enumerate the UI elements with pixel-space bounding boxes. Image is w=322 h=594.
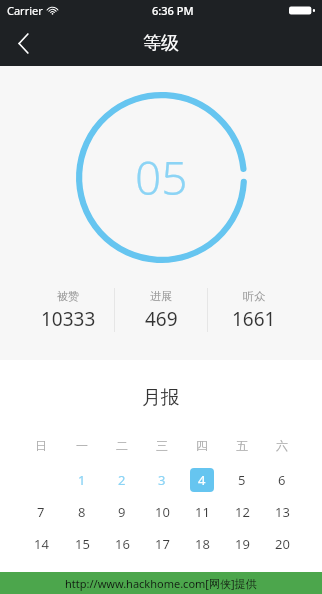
- staticText: 6: [278, 471, 286, 489]
- staticText: 6:36 PM: [152, 3, 194, 18]
- button[interactable]: 12: [230, 500, 254, 524]
- staticText: 469: [145, 306, 178, 332]
- staticText: 10333: [41, 306, 96, 332]
- staticText: 被赞: [57, 289, 79, 303]
- button[interactable]: 被赞: [22, 288, 114, 332]
- button[interactable]: 15: [70, 532, 94, 556]
- button[interactable]: 19: [230, 532, 254, 556]
- staticText: http://www.hackhome.com[网侠]提供: [65, 576, 257, 591]
- staticText: 8: [78, 503, 86, 521]
- staticText: 2: [118, 471, 126, 489]
- staticText: 20: [275, 535, 290, 553]
- staticText: 10: [155, 503, 170, 521]
- staticText: 月报: [0, 386, 322, 410]
- button[interactable]: 14: [29, 532, 53, 556]
- staticText: 19: [235, 535, 250, 553]
- staticText: 4: [198, 471, 206, 489]
- button[interactable]: 2: [110, 468, 134, 492]
- staticText: 05: [135, 146, 188, 209]
- staticText: 二: [116, 438, 128, 453]
- staticText: 17: [155, 535, 170, 553]
- button[interactable]: 3: [150, 468, 174, 492]
- staticText: 18: [195, 535, 210, 553]
- button[interactable]: 进展: [115, 288, 207, 332]
- staticText: 进展: [150, 289, 172, 303]
- staticText: 日: [35, 438, 47, 453]
- button[interactable]: 10: [150, 500, 174, 524]
- button[interactable]: Back: [0, 20, 46, 66]
- button[interactable]: 13: [270, 500, 294, 524]
- staticText: 14: [34, 535, 49, 553]
- staticText: 一: [76, 438, 88, 453]
- button[interactable]: 听众: [208, 288, 300, 332]
- button[interactable]: 16: [110, 532, 134, 556]
- button[interactable]: 5: [230, 468, 254, 492]
- staticText: 三: [156, 438, 168, 453]
- staticText: 9: [118, 503, 126, 521]
- button[interactable]: 8: [70, 500, 94, 524]
- button[interactable]: 6: [270, 468, 294, 492]
- button[interactable]: 1: [70, 468, 94, 492]
- staticText: 四: [196, 438, 208, 453]
- staticText: 16: [115, 535, 130, 553]
- staticText: 12: [235, 503, 250, 521]
- staticText: 13: [275, 503, 290, 521]
- staticText: 11: [195, 503, 210, 521]
- staticText: 1661: [232, 306, 276, 332]
- staticText: 等级: [143, 32, 179, 55]
- staticText: 7: [37, 503, 45, 521]
- button[interactable]: 4: [190, 468, 214, 492]
- button[interactable]: 18: [190, 532, 214, 556]
- button[interactable]: 9: [110, 500, 134, 524]
- staticText: 3: [158, 471, 166, 489]
- button[interactable]: 7: [29, 500, 53, 524]
- button[interactable]: 20: [270, 532, 294, 556]
- button[interactable]: 17: [150, 532, 174, 556]
- staticText: 15: [75, 535, 90, 553]
- staticText: Carrier: [7, 3, 43, 18]
- staticText: 六: [276, 438, 288, 453]
- staticText: 听众: [243, 289, 265, 303]
- button[interactable]: 11: [190, 500, 214, 524]
- staticText: 5: [238, 471, 246, 489]
- staticText: 1: [78, 471, 86, 489]
- staticText: 五: [236, 438, 248, 453]
